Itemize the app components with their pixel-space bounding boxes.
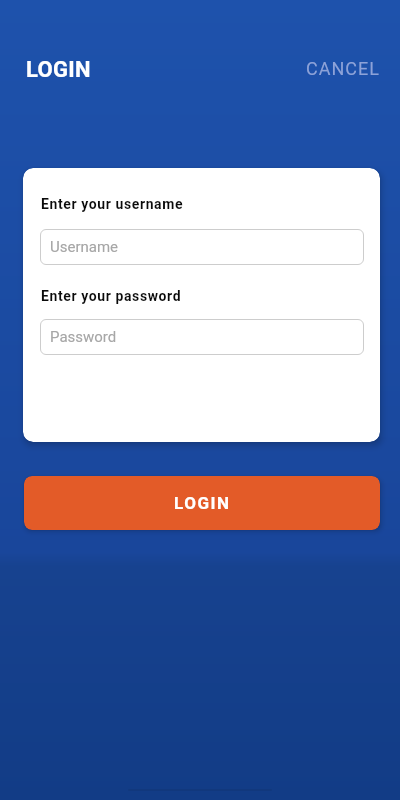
staticText: LOGIN: [174, 493, 231, 513]
staticText: Username: [50, 238, 119, 256]
button[interactable]: LOGIN: [24, 476, 380, 530]
staticText: LOGIN: [26, 57, 91, 83]
button[interactable]: Username: [40, 229, 364, 265]
staticText: Enter your password: [41, 288, 182, 304]
staticText: Enter your username: [41, 196, 184, 212]
staticText: CANCEL: [306, 58, 380, 79]
button[interactable]: Password: [40, 319, 364, 355]
staticText: Password: [50, 328, 117, 346]
button[interactable]: CANCEL: [304, 56, 382, 81]
